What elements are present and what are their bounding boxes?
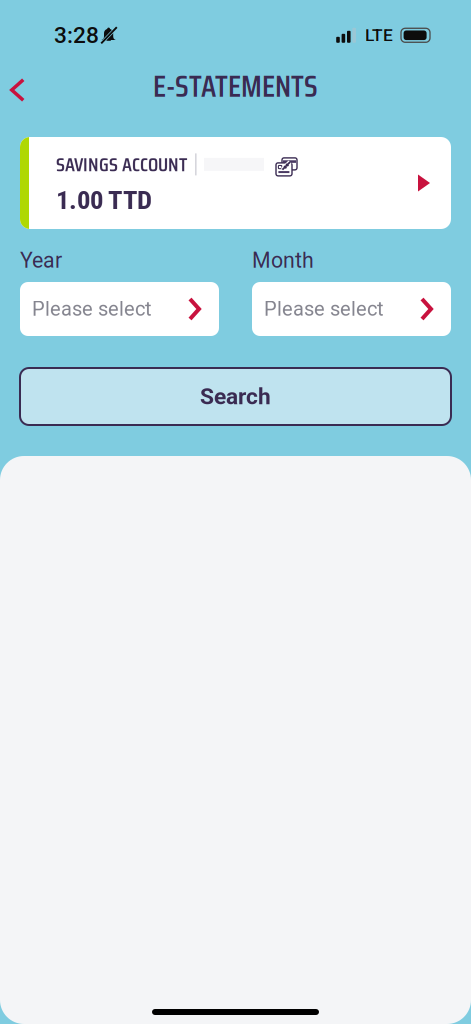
staticText: Please select [32, 297, 152, 321]
button[interactable]: Search [20, 368, 451, 425]
staticText: 1.00 TTD [56, 184, 152, 216]
staticText: SAVINGS ACCOUNT [56, 149, 187, 180]
staticText: Year [20, 248, 62, 273]
button[interactable]: Please select [20, 282, 219, 336]
staticText: Search [200, 383, 271, 410]
staticText: Month [252, 248, 314, 273]
button[interactable]: SAVINGS ACCOUNT [20, 137, 451, 229]
button[interactable]: Back [0, 62, 41, 110]
button[interactable]: Please select [252, 282, 451, 336]
staticText: Please select [264, 297, 384, 321]
staticText: E-STATEMENTS [153, 62, 318, 110]
staticText: 3:28 [54, 22, 99, 49]
staticText: LTE [365, 25, 393, 45]
